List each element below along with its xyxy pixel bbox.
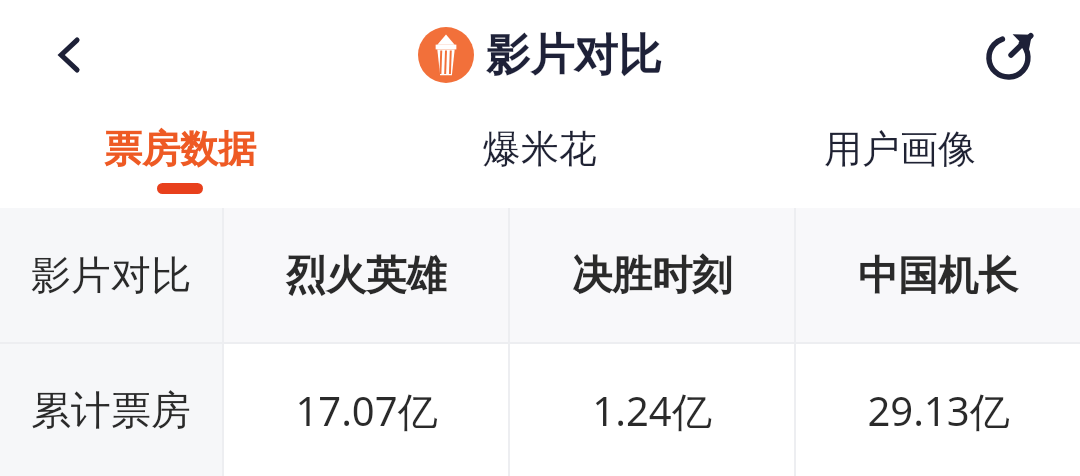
staticText: 影片对比 [31,250,191,300]
button[interactable]: 17.07亿 [224,344,508,476]
button[interactable]: 决胜时刻 [510,208,794,342]
button[interactable]: 29.13亿 [796,344,1080,476]
button[interactable]: 影片对比 [0,208,222,342]
button[interactable]: 1.24亿 [510,344,794,476]
button[interactable]: 票房数据 [0,110,360,208]
staticText: 烈火英雄 [286,250,446,300]
staticText: 票房数据 [104,125,256,173]
staticText: 29.13亿 [867,383,1010,438]
button[interactable]: Share [970,15,1050,95]
staticText: 累计票房 [31,385,191,435]
button[interactable]: Back [30,15,110,95]
staticText: 1.24亿 [592,383,712,438]
staticText: 决胜时刻 [572,250,732,300]
staticText: 用户画像 [824,125,976,173]
button[interactable]: 累计票房 [0,344,222,476]
button[interactable]: 烈火英雄 [224,208,508,342]
button[interactable]: 爆米花 [360,110,720,208]
staticText: 17.07亿 [295,383,438,438]
staticText: 爆米花 [483,125,597,173]
staticText: 中国机长 [858,250,1018,300]
button[interactable]: 中国机长 [796,208,1080,342]
button[interactable]: 用户画像 [720,110,1080,208]
staticText: 影片对比 [486,28,662,83]
